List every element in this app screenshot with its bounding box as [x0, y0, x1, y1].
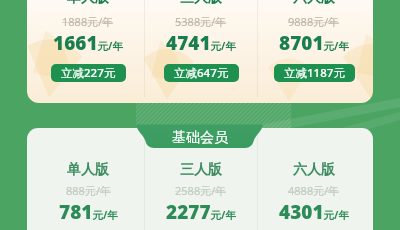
staticText: 4888元/年 — [288, 183, 340, 198]
staticText: 2588元/年 — [175, 183, 227, 198]
staticText: 4301元/年 — [279, 199, 349, 225]
staticText: 三人版 — [180, 0, 222, 7]
staticText: 立减647元 — [174, 65, 229, 81]
button[interactable]: 立减647元 — [164, 64, 239, 82]
staticText: 2277元/年 — [166, 199, 236, 225]
button[interactable]: 立减1187元 — [274, 64, 355, 82]
staticText: 9888元/年 — [288, 14, 340, 29]
staticText: 8701元/年 — [279, 30, 349, 56]
staticText: 三人版 — [180, 161, 222, 179]
staticText: 5388元/年 — [175, 14, 227, 29]
button[interactable]: 基础会员 — [142, 126, 258, 150]
staticText: 888元/年 — [66, 183, 111, 198]
staticText: 单人版 — [67, 0, 109, 7]
staticText: 立减1187元 — [284, 65, 345, 81]
button[interactable]: 立减227元 — [51, 64, 126, 82]
staticText: 单人版 — [67, 161, 109, 179]
staticText: 781元/年 — [59, 199, 118, 225]
staticText: 4741元/年 — [166, 30, 236, 56]
staticText: 六人版 — [293, 161, 335, 179]
staticText: 1888元/年 — [62, 14, 114, 29]
staticText: 基础会员 — [172, 129, 228, 147]
staticText: 立减227元 — [61, 65, 116, 81]
staticText: 六人版 — [293, 0, 335, 7]
staticText: 1661元/年 — [53, 30, 123, 56]
